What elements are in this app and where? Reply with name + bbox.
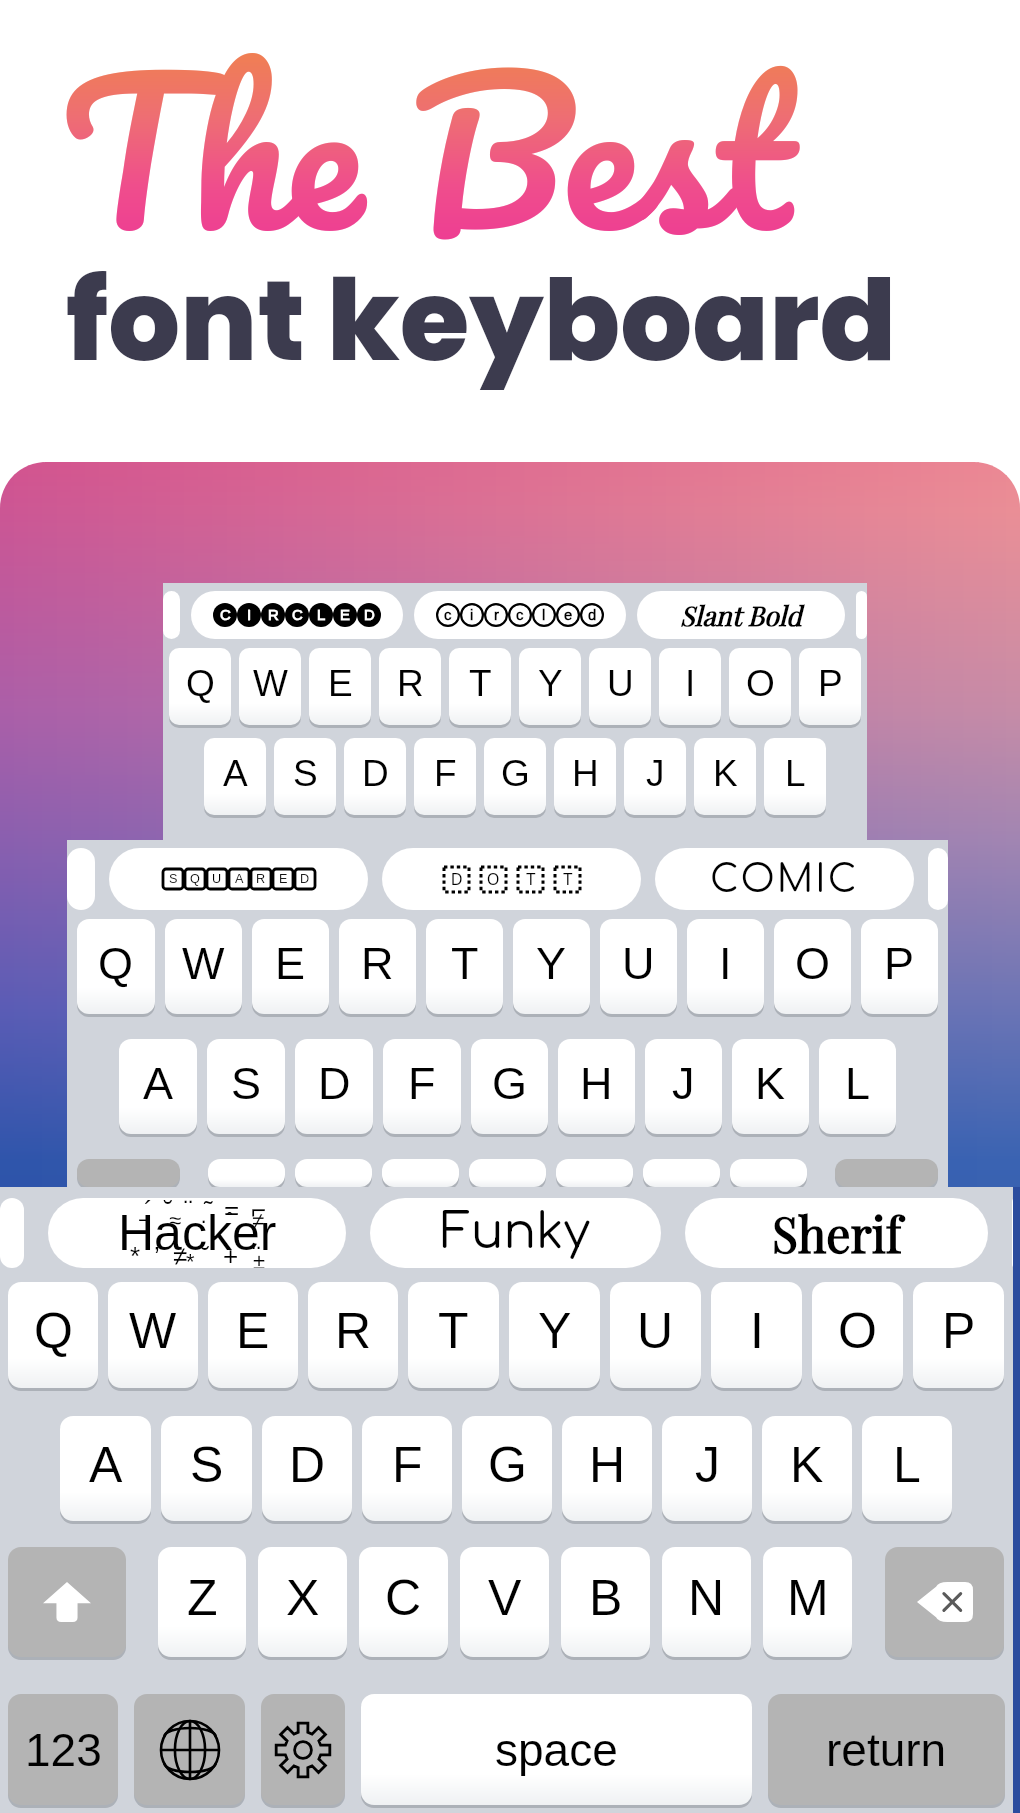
button[interactable]: Hacker xyxy=(48,1198,346,1268)
button[interactable]: L xyxy=(764,738,826,815)
button[interactable]: I xyxy=(687,919,764,1014)
button[interactable]: W xyxy=(108,1282,198,1388)
button[interactable]: Y xyxy=(519,648,581,725)
button[interactable]: E xyxy=(208,1282,298,1388)
button[interactable]: R xyxy=(308,1282,398,1388)
other: Change language xyxy=(134,1694,245,1805)
button[interactable]: M xyxy=(763,1547,852,1657)
button[interactable] xyxy=(163,591,180,639)
button[interactable]: H xyxy=(558,1039,635,1134)
button[interactable] xyxy=(643,1159,720,1187)
button[interactable]: D xyxy=(262,1416,352,1521)
button[interactable]: D xyxy=(295,1039,373,1134)
button[interactable]: H xyxy=(562,1416,652,1521)
button[interactable]: T xyxy=(408,1282,499,1388)
button[interactable]: O xyxy=(812,1282,903,1388)
button[interactable]: O xyxy=(729,648,791,725)
button[interactable]: W xyxy=(239,648,301,725)
staticText: Funky xyxy=(441,1206,590,1260)
button[interactable] xyxy=(1012,1198,1020,1268)
button[interactable] xyxy=(134,1694,245,1805)
staticText: ˆ xyxy=(226,1208,234,1233)
button[interactable] xyxy=(295,1159,372,1187)
button[interactable]: Y xyxy=(513,919,590,1014)
button[interactable]: D xyxy=(344,738,406,815)
button[interactable]: Q xyxy=(169,648,231,725)
button[interactable]: L xyxy=(862,1416,952,1521)
button[interactable] xyxy=(835,1159,938,1187)
button[interactable]: S xyxy=(207,1039,285,1134)
button[interactable] xyxy=(67,848,95,910)
button[interactable]: J xyxy=(645,1039,722,1134)
button[interactable] xyxy=(856,591,867,639)
button[interactable]: F xyxy=(383,1039,461,1134)
button[interactable]: V xyxy=(460,1547,549,1657)
button[interactable]: COMIC xyxy=(655,848,914,910)
button[interactable]: F xyxy=(362,1416,452,1521)
button[interactable]: R xyxy=(379,648,441,725)
button[interactable]: 123 xyxy=(8,1694,118,1805)
button[interactable]: B xyxy=(561,1547,650,1657)
button[interactable] xyxy=(469,1159,546,1187)
button[interactable]: C xyxy=(359,1547,448,1657)
button[interactable] xyxy=(0,1198,24,1268)
button[interactable]: I xyxy=(659,648,721,725)
button[interactable]: J xyxy=(624,738,686,815)
button[interactable]: G xyxy=(462,1416,552,1521)
button[interactable]: A xyxy=(60,1416,151,1521)
button[interactable]: H xyxy=(554,738,616,815)
button[interactable] xyxy=(208,1159,285,1187)
button[interactable]: Slant Bold xyxy=(637,591,845,639)
button[interactable]: P xyxy=(799,648,861,725)
button[interactable]: N xyxy=(662,1547,751,1657)
button[interactable]: space xyxy=(361,1694,752,1805)
button[interactable] xyxy=(382,1159,459,1187)
staticText: Y xyxy=(536,938,567,988)
button[interactable]: P xyxy=(913,1282,1004,1388)
button[interactable]: O xyxy=(774,919,851,1014)
button[interactable] xyxy=(261,1694,345,1805)
button[interactable]: S xyxy=(274,738,336,815)
button[interactable]: return xyxy=(768,1694,1005,1805)
button[interactable] xyxy=(8,1547,126,1657)
button[interactable]: Sherif xyxy=(685,1198,988,1268)
button[interactable]: K xyxy=(762,1416,852,1521)
button[interactable]: Y xyxy=(509,1282,600,1388)
button[interactable]: S xyxy=(161,1416,252,1521)
button[interactable]: J xyxy=(662,1416,752,1521)
button[interactable] xyxy=(885,1547,1004,1657)
button[interactable]: U xyxy=(589,648,651,725)
button[interactable] xyxy=(730,1159,807,1187)
button[interactable]: D xyxy=(382,848,641,910)
button[interactable]: W xyxy=(165,919,242,1014)
button[interactable]: P xyxy=(861,919,938,1014)
button[interactable]: U xyxy=(610,1282,701,1388)
button[interactable]: K xyxy=(694,738,756,815)
button[interactable]: G xyxy=(471,1039,548,1134)
button[interactable]: c xyxy=(414,591,626,639)
button[interactable]: Z xyxy=(158,1547,246,1657)
button[interactable]: F xyxy=(414,738,476,815)
button[interactable]: U xyxy=(600,919,677,1014)
button[interactable]: L xyxy=(819,1039,896,1134)
button[interactable]: A xyxy=(204,738,266,815)
button[interactable]: S xyxy=(109,848,368,910)
button[interactable]: K xyxy=(732,1039,809,1134)
button[interactable]: T xyxy=(426,919,503,1014)
button[interactable]: R xyxy=(339,919,416,1014)
button[interactable] xyxy=(928,848,948,910)
button[interactable]: G xyxy=(484,738,546,815)
button[interactable]: E xyxy=(252,919,329,1014)
button[interactable]: Q xyxy=(77,919,155,1014)
button[interactable]: T xyxy=(449,648,511,725)
button[interactable]: Q xyxy=(8,1282,98,1388)
button[interactable] xyxy=(556,1159,633,1187)
staticText: l xyxy=(542,607,546,624)
button[interactable]: I xyxy=(711,1282,802,1388)
button[interactable]: E xyxy=(309,648,371,725)
button[interactable]: A xyxy=(119,1039,197,1134)
button[interactable]: X xyxy=(258,1547,347,1657)
button[interactable]: C xyxy=(191,591,403,639)
button[interactable]: Funky xyxy=(370,1198,661,1268)
button[interactable] xyxy=(77,1159,180,1187)
